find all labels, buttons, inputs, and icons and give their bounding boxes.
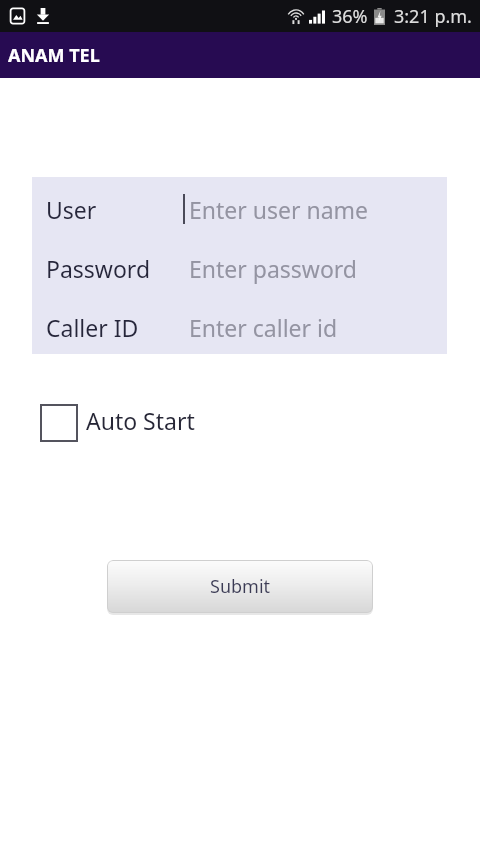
staticText: Enter user name bbox=[189, 194, 369, 225]
staticText: User bbox=[46, 194, 97, 225]
button[interactable]: Auto Start bbox=[40, 404, 195, 442]
other: Battery charging 36 percent bbox=[374, 8, 385, 25]
staticText: Caller ID bbox=[46, 312, 139, 343]
button[interactable]: User bbox=[32, 177, 447, 236]
staticText: Password bbox=[46, 253, 151, 284]
staticText: 36% bbox=[332, 4, 368, 29]
other: Mobile signal strength bbox=[309, 8, 325, 25]
other: Download complete bbox=[36, 8, 50, 24]
button[interactable]: Password bbox=[32, 236, 447, 295]
staticText: Enter password bbox=[189, 253, 358, 284]
staticText: Submit bbox=[210, 574, 271, 599]
other: Screenshot captured bbox=[10, 8, 25, 24]
staticText: Auto Start bbox=[86, 405, 195, 436]
staticText: 3:21 p.m. bbox=[394, 4, 472, 29]
button[interactable]: Submit bbox=[107, 560, 373, 613]
other: Wi-Fi connected bbox=[287, 9, 305, 25]
staticText: Enter caller id bbox=[189, 312, 338, 343]
button[interactable]: Caller ID bbox=[32, 295, 447, 354]
staticText: ANAM TEL bbox=[8, 43, 100, 68]
